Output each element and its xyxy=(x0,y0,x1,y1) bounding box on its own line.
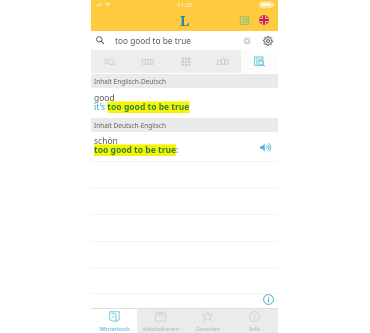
staticText: Info xyxy=(249,325,260,332)
staticText: good xyxy=(94,92,115,104)
button[interactable]: Phrases xyxy=(129,50,167,73)
button[interactable]: Favoriten xyxy=(184,308,231,333)
staticText: 11:20 xyxy=(177,1,193,9)
button[interactable]: Language xyxy=(257,13,270,26)
staticText: too good to be true: xyxy=(94,144,179,156)
button[interactable] xyxy=(91,293,278,319)
staticText: Favoriten xyxy=(196,325,220,332)
staticText: L xyxy=(180,11,190,30)
button[interactable]: Vokabelkarten xyxy=(137,308,184,333)
button[interactable]: Settings xyxy=(261,34,274,47)
button[interactable]: Conjugation xyxy=(204,50,241,73)
button[interactable]: Word list xyxy=(238,14,251,27)
button[interactable]: Clear text xyxy=(241,35,253,47)
staticText: too good to be true xyxy=(115,35,191,46)
staticText: Wörterbuch xyxy=(99,325,130,332)
button[interactable]: too good to be true xyxy=(91,31,278,50)
button[interactable]: Play pronunciation xyxy=(258,140,272,154)
staticText: Inhalt Englisch-Deutsch xyxy=(94,77,166,86)
button[interactable]: good xyxy=(91,88,278,119)
button[interactable]: Info xyxy=(231,308,278,333)
staticText: Vokabelkarten xyxy=(142,325,179,332)
button[interactable]: Full text search xyxy=(241,50,278,73)
staticText: Inhalt Deutsch-Englisch xyxy=(94,121,166,130)
button[interactable]: Search xyxy=(91,50,129,73)
button[interactable]: Wörterbuch xyxy=(91,308,137,333)
staticText: it's too good to be true xyxy=(94,101,190,113)
button[interactable]: schön xyxy=(91,132,278,161)
button[interactable]: Keyboard xyxy=(167,50,204,73)
button[interactable]: Info xyxy=(261,292,276,307)
staticText: schön xyxy=(94,135,118,147)
